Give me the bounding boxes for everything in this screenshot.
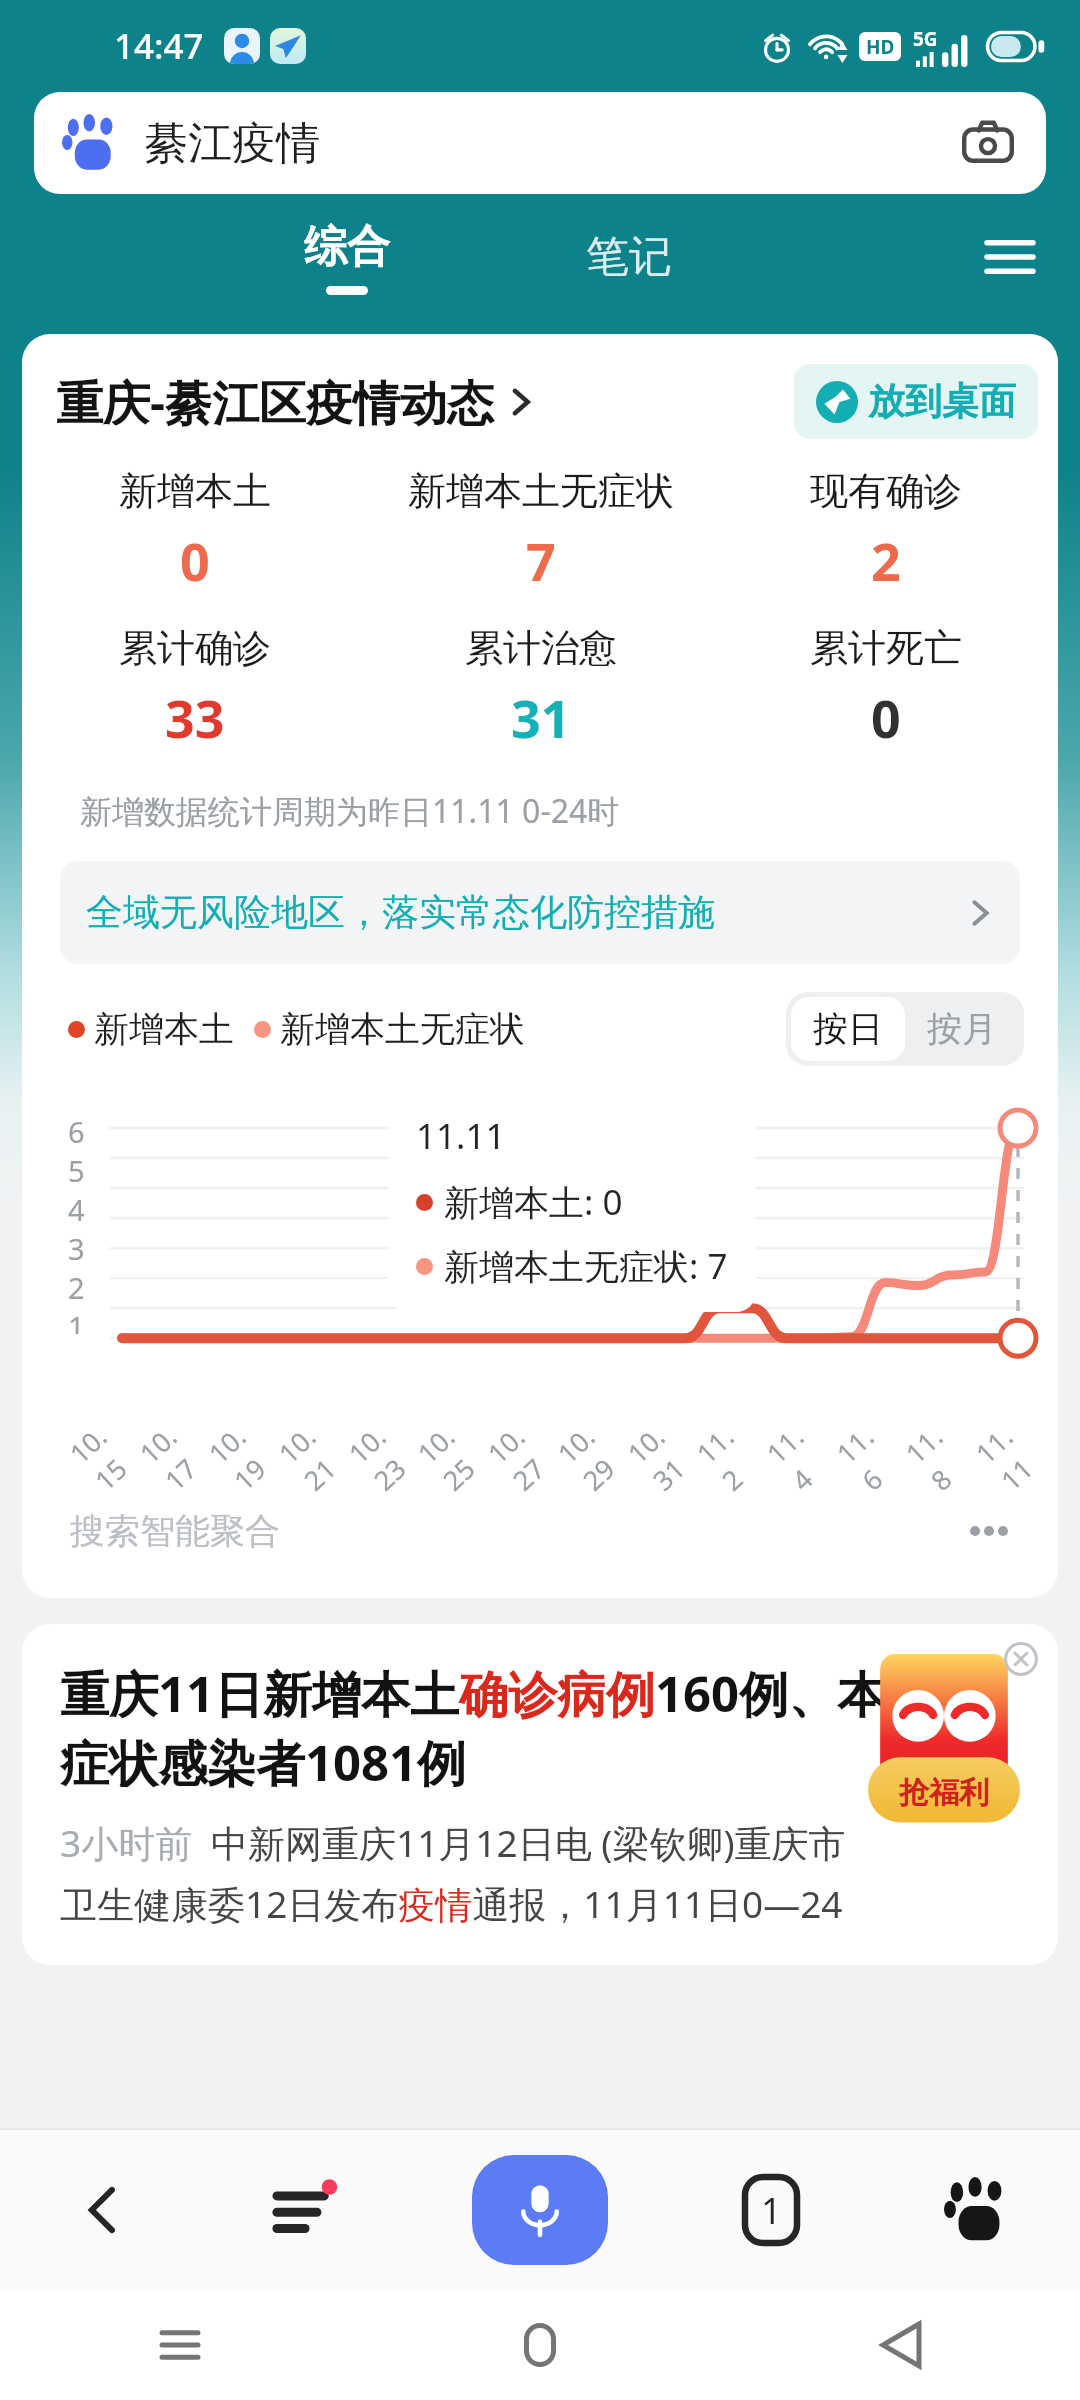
staticText: 累计死亡	[810, 624, 962, 672]
staticText: 6	[68, 1112, 85, 1151]
button[interactable]: 放到桌面	[794, 364, 1038, 439]
staticText: 笔记	[586, 230, 672, 284]
staticText: 10.23	[340, 1412, 426, 1498]
staticText: 重庆-綦江区疫情动态	[56, 370, 495, 434]
staticText: 10.17	[131, 1412, 217, 1498]
staticText: 抢福利	[899, 1774, 989, 1812]
staticText: 新增数据统计周期为昨日11.11 0-24时	[80, 789, 620, 833]
button[interactable]: Tabs	[668, 2130, 874, 2290]
staticText: 10.29	[549, 1412, 635, 1498]
staticText: 0	[871, 682, 901, 753]
staticText: 11.6	[828, 1412, 914, 1498]
button[interactable]: Back	[0, 2130, 205, 2290]
staticText: 新增本土	[94, 1007, 234, 1051]
staticText: 中新网重庆11月12日电 (梁钦卿)重庆市	[211, 1817, 846, 1868]
button[interactable]: Camera search	[952, 107, 1024, 179]
staticText: 0	[180, 525, 210, 596]
button[interactable]: 综合	[280, 214, 414, 301]
staticText: 新增本土无症状: 7	[444, 1242, 728, 1290]
staticText: 5G	[913, 26, 938, 52]
staticText: 5	[68, 1151, 85, 1190]
staticText: 11.2	[688, 1412, 774, 1498]
button[interactable]: 新增本土	[22, 463, 368, 600]
staticText: 1	[761, 2186, 782, 2235]
staticText: 新增本土: 0	[444, 1178, 623, 1226]
button[interactable]: 累计死亡	[713, 620, 1058, 757]
button[interactable]: Close ad	[998, 1636, 1044, 1682]
staticText: 31	[511, 682, 571, 753]
staticText: 10.27	[479, 1412, 565, 1498]
staticText: 2	[871, 525, 901, 596]
button[interactable]: Menu	[968, 215, 1052, 299]
button[interactable]: 重庆-綦江区疫情动态	[56, 370, 535, 434]
button[interactable]: 笔记	[562, 216, 696, 298]
staticText: 综合	[304, 220, 390, 274]
staticText: 现有确诊	[810, 467, 962, 515]
staticText: 14:47	[114, 22, 204, 70]
button[interactable]: 按月	[905, 997, 1019, 1061]
staticText: 新增本土	[119, 467, 271, 515]
button[interactable]: 新增本土无症状	[368, 463, 713, 600]
button[interactable]: 重庆11日新增本土确诊病例160例、本土无症状感染者1081例	[22, 1624, 1058, 1965]
staticText: 新增本土无症状	[408, 467, 674, 515]
button[interactable]: 累计治愈	[368, 620, 713, 757]
button[interactable]: More options	[964, 1506, 1014, 1556]
staticText: 搜索智能聚合	[70, 1509, 280, 1553]
staticText: 1	[68, 1307, 85, 1334]
staticText: 3	[68, 1229, 85, 1268]
staticText: 卫生健康委12日发布疫情通报，11月11日0—24	[60, 1878, 843, 1929]
staticText: 按日	[813, 1007, 883, 1051]
button[interactable]: 全域无风险地区，落实常态化防控措施	[60, 861, 1020, 964]
button[interactable]: Voice search	[472, 2155, 608, 2265]
staticText: HD	[866, 34, 895, 60]
staticText: 2	[68, 1268, 85, 1307]
button[interactable]: 綦江疫情	[34, 92, 1046, 194]
staticText: 7	[526, 525, 556, 596]
button[interactable]: Baidu home	[874, 2130, 1080, 2290]
staticText: 33	[165, 682, 225, 753]
staticText: 11.4	[758, 1412, 844, 1498]
button[interactable]: Multi window	[205, 2130, 411, 2290]
staticText: 累计确诊	[119, 624, 271, 672]
staticText: 10.15	[61, 1412, 147, 1498]
staticText: 放到桌面	[868, 378, 1016, 425]
staticText: 按月	[927, 1007, 997, 1051]
staticText: 11.11	[416, 1112, 506, 1160]
staticText: 累计治愈	[465, 624, 617, 672]
staticText: 全域无风险地区，落实常态化防控措施	[86, 889, 715, 936]
button[interactable]: 按日	[791, 997, 905, 1061]
staticText: 11.11	[967, 1412, 1053, 1498]
button[interactable]: 现有确诊	[713, 463, 1058, 600]
staticText: 4	[68, 1190, 85, 1229]
button[interactable]: 累计确诊	[22, 620, 368, 757]
staticText: 10.21	[270, 1412, 356, 1498]
staticText: 10.19	[200, 1412, 286, 1498]
staticText: 3小时前	[60, 1817, 193, 1868]
staticText: 綦江疫情	[144, 116, 320, 171]
staticText: 新增本土无症状	[280, 1007, 525, 1051]
staticText: 11.8	[897, 1412, 983, 1498]
staticText: 10.31	[619, 1412, 705, 1498]
staticText: 重庆11日新增本土确诊病例160例、本土无症状感染者1081例	[60, 1660, 1024, 1795]
staticText: 10.25	[409, 1412, 495, 1498]
